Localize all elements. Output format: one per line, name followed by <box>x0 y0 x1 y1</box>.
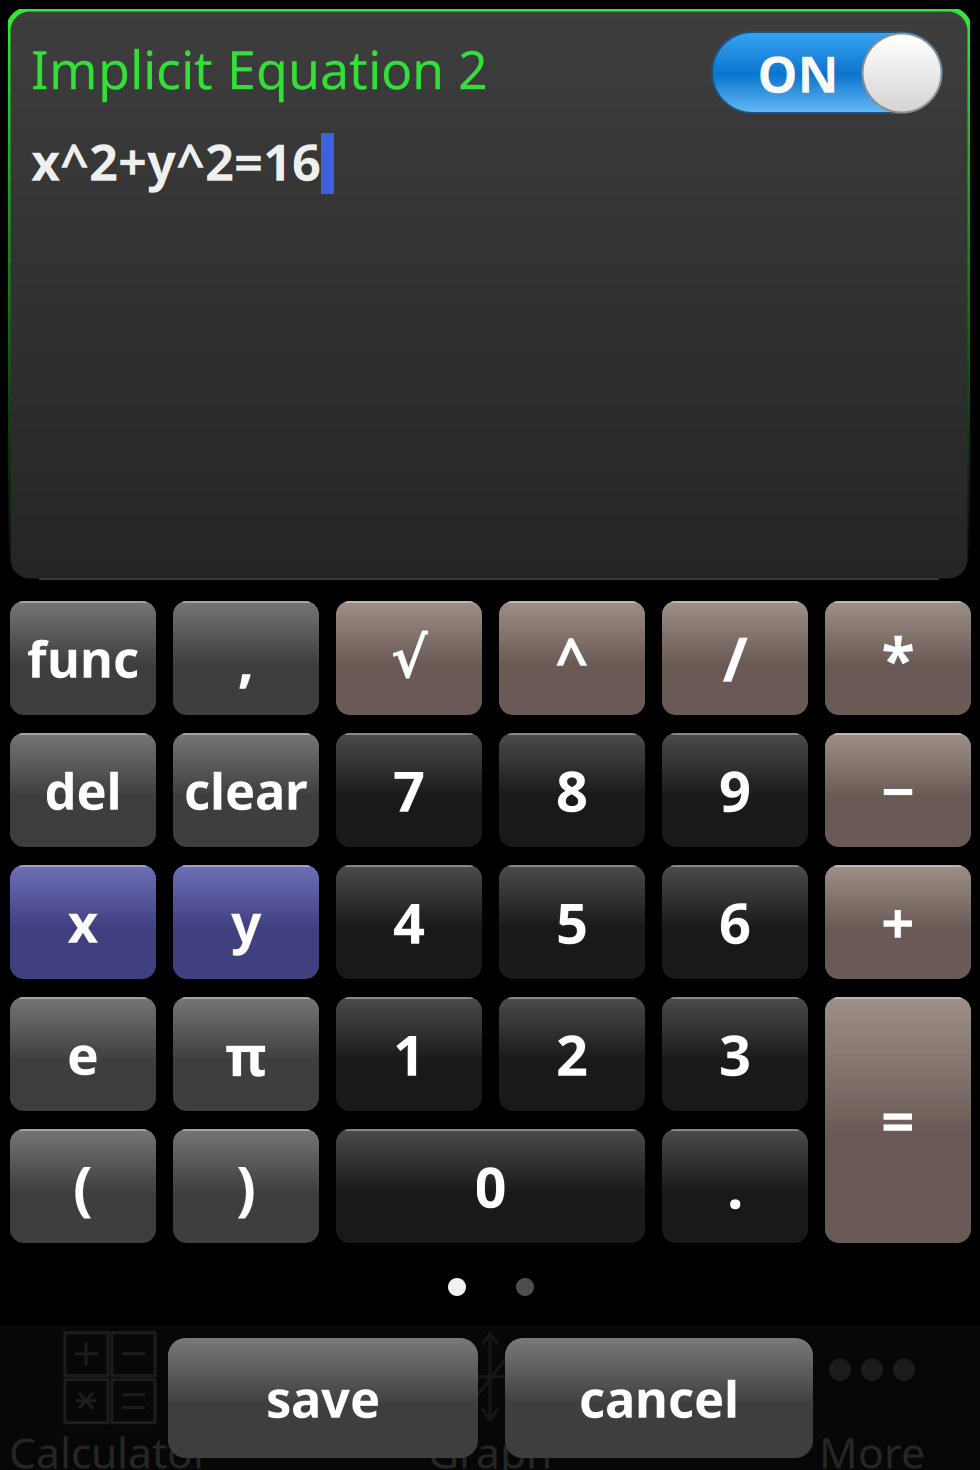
staticText: * <box>881 617 914 699</box>
button[interactable]: x <box>10 865 156 979</box>
button[interactable]: e <box>10 997 156 1111</box>
staticText: x <box>67 887 98 957</box>
staticText: π <box>225 1017 267 1091</box>
button[interactable]: √ <box>336 601 482 715</box>
staticText: − <box>881 751 915 829</box>
staticText: Implicit Equation 2 <box>31 34 488 104</box>
staticText: 4 <box>393 885 425 959</box>
button[interactable]: − <box>825 733 971 847</box>
button[interactable]: 3 <box>662 997 808 1111</box>
staticText: ( <box>73 1147 93 1225</box>
button[interactable]: , <box>173 601 319 715</box>
staticText: , <box>237 619 254 697</box>
button[interactable]: cancel <box>505 1338 813 1458</box>
staticText: 3 <box>719 1017 751 1091</box>
staticText: ^ <box>555 619 589 697</box>
button[interactable]: clear <box>173 733 319 847</box>
staticText: ON <box>757 39 838 107</box>
staticText: 2 <box>556 1017 588 1091</box>
button[interactable]: π <box>173 997 319 1111</box>
staticText: Calculator <box>9 1424 211 1470</box>
staticText: ) <box>236 1147 256 1225</box>
staticText: Graph <box>428 1424 552 1470</box>
staticText: . <box>727 1147 743 1225</box>
staticText: e <box>67 1019 99 1089</box>
staticText: 5 <box>556 885 588 959</box>
staticText: 9 <box>719 753 751 827</box>
button[interactable]: y <box>173 865 319 979</box>
staticText: 6 <box>719 885 751 959</box>
button[interactable]: del <box>10 733 156 847</box>
button[interactable]: . <box>662 1129 808 1243</box>
button[interactable]: Calculator <box>0 1336 220 1470</box>
button[interactable]: save <box>168 1338 478 1458</box>
button[interactable]: More <box>764 1336 980 1470</box>
button[interactable]: ^ <box>499 601 645 715</box>
button[interactable]: 7 <box>336 733 482 847</box>
button[interactable]: 0 <box>336 1129 645 1243</box>
button[interactable]: = <box>825 997 971 1243</box>
staticText: 8 <box>556 753 588 827</box>
button[interactable]: 9 <box>662 733 808 847</box>
staticText: = <box>881 1081 915 1159</box>
button[interactable]: Equation enabled, on <box>712 32 942 113</box>
staticText: x^2+y^2=16 <box>31 127 321 195</box>
button[interactable]: 1 <box>336 997 482 1111</box>
button[interactable]: * <box>825 601 971 715</box>
button[interactable]: ) <box>173 1129 319 1243</box>
button[interactable]: 5 <box>499 865 645 979</box>
staticText: 0 <box>474 1149 506 1223</box>
button[interactable]: 6 <box>662 865 808 979</box>
button[interactable]: ( <box>10 1129 156 1243</box>
staticText: 1 <box>393 1017 425 1091</box>
button[interactable]: 4 <box>336 865 482 979</box>
button[interactable]: 2 <box>499 997 645 1111</box>
button[interactable]: 8 <box>499 733 645 847</box>
button[interactable]: + <box>825 865 971 979</box>
staticText: y <box>231 887 261 957</box>
button[interactable]: func <box>10 601 156 715</box>
button[interactable]: / <box>662 601 808 715</box>
staticText: + <box>881 883 915 961</box>
button[interactable]: Graph <box>380 1336 600 1470</box>
staticText: More <box>819 1424 925 1470</box>
staticText: func <box>27 624 139 692</box>
staticText: clear <box>184 756 308 824</box>
staticText: √ <box>390 626 427 690</box>
staticText: save <box>266 1364 380 1432</box>
staticText: / <box>722 617 747 699</box>
staticText: 7 <box>393 753 425 827</box>
staticText: del <box>44 756 121 824</box>
staticText: cancel <box>579 1364 739 1432</box>
